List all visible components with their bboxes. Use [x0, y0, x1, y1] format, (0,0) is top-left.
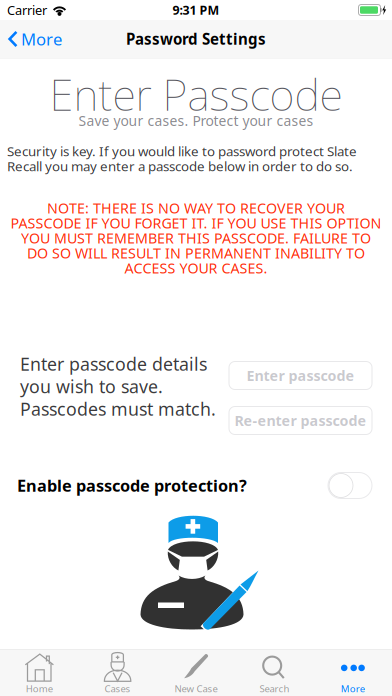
staticText: New Case [174, 682, 217, 695]
staticText: Enter passcode details [20, 352, 207, 376]
staticText: NOTE: THERE IS NO WAY TO RECOVER YOUR [47, 198, 345, 218]
staticText: DO SO WILL RESULT IN PERMANENT INABILITY… [27, 243, 365, 263]
staticText: PASSCODE IF YOU FORGET IT. IF YOU USE TH… [10, 213, 381, 233]
button[interactable]: Enter passcode [229, 361, 372, 389]
staticText: Cases [105, 682, 131, 695]
staticText: Search [259, 682, 289, 695]
staticText: you wish to save. [20, 374, 163, 398]
staticText: Recall you may enter a passcode below in… [7, 157, 353, 175]
staticText: Password Settings [126, 29, 266, 49]
staticText: Save your cases. Protect your cases [78, 111, 313, 130]
button[interactable]: Re-enter passcode [229, 406, 372, 434]
staticText: Enter Passcode [49, 64, 342, 123]
staticText: YOU MUST REMEMBER THIS PASSCODE. FAILURE… [21, 228, 371, 248]
staticText: Security is key. If you would like to pa… [7, 142, 357, 160]
button[interactable]: More [314, 649, 392, 696]
button[interactable]: Home [0, 649, 78, 696]
button[interactable]: More [0, 23, 68, 55]
staticText: ACCESS YOUR CASES. [124, 258, 267, 278]
staticText: Home [26, 682, 53, 695]
button[interactable]: New Case [157, 649, 235, 696]
staticText: 9:31 PM [172, 2, 219, 18]
staticText: Enter passcode [246, 366, 354, 385]
staticText: More [341, 682, 365, 695]
staticText: More [21, 28, 62, 50]
staticText: Re-enter passcode [234, 411, 366, 430]
staticText: Enable passcode protection? [17, 474, 247, 497]
button[interactable]: Cases [78, 649, 157, 696]
button[interactable]: Search [235, 649, 314, 696]
button[interactable]: Enable passcode protection [328, 472, 372, 498]
staticText: Carrier [7, 1, 47, 19]
staticText: Passcodes must match. [20, 397, 216, 421]
